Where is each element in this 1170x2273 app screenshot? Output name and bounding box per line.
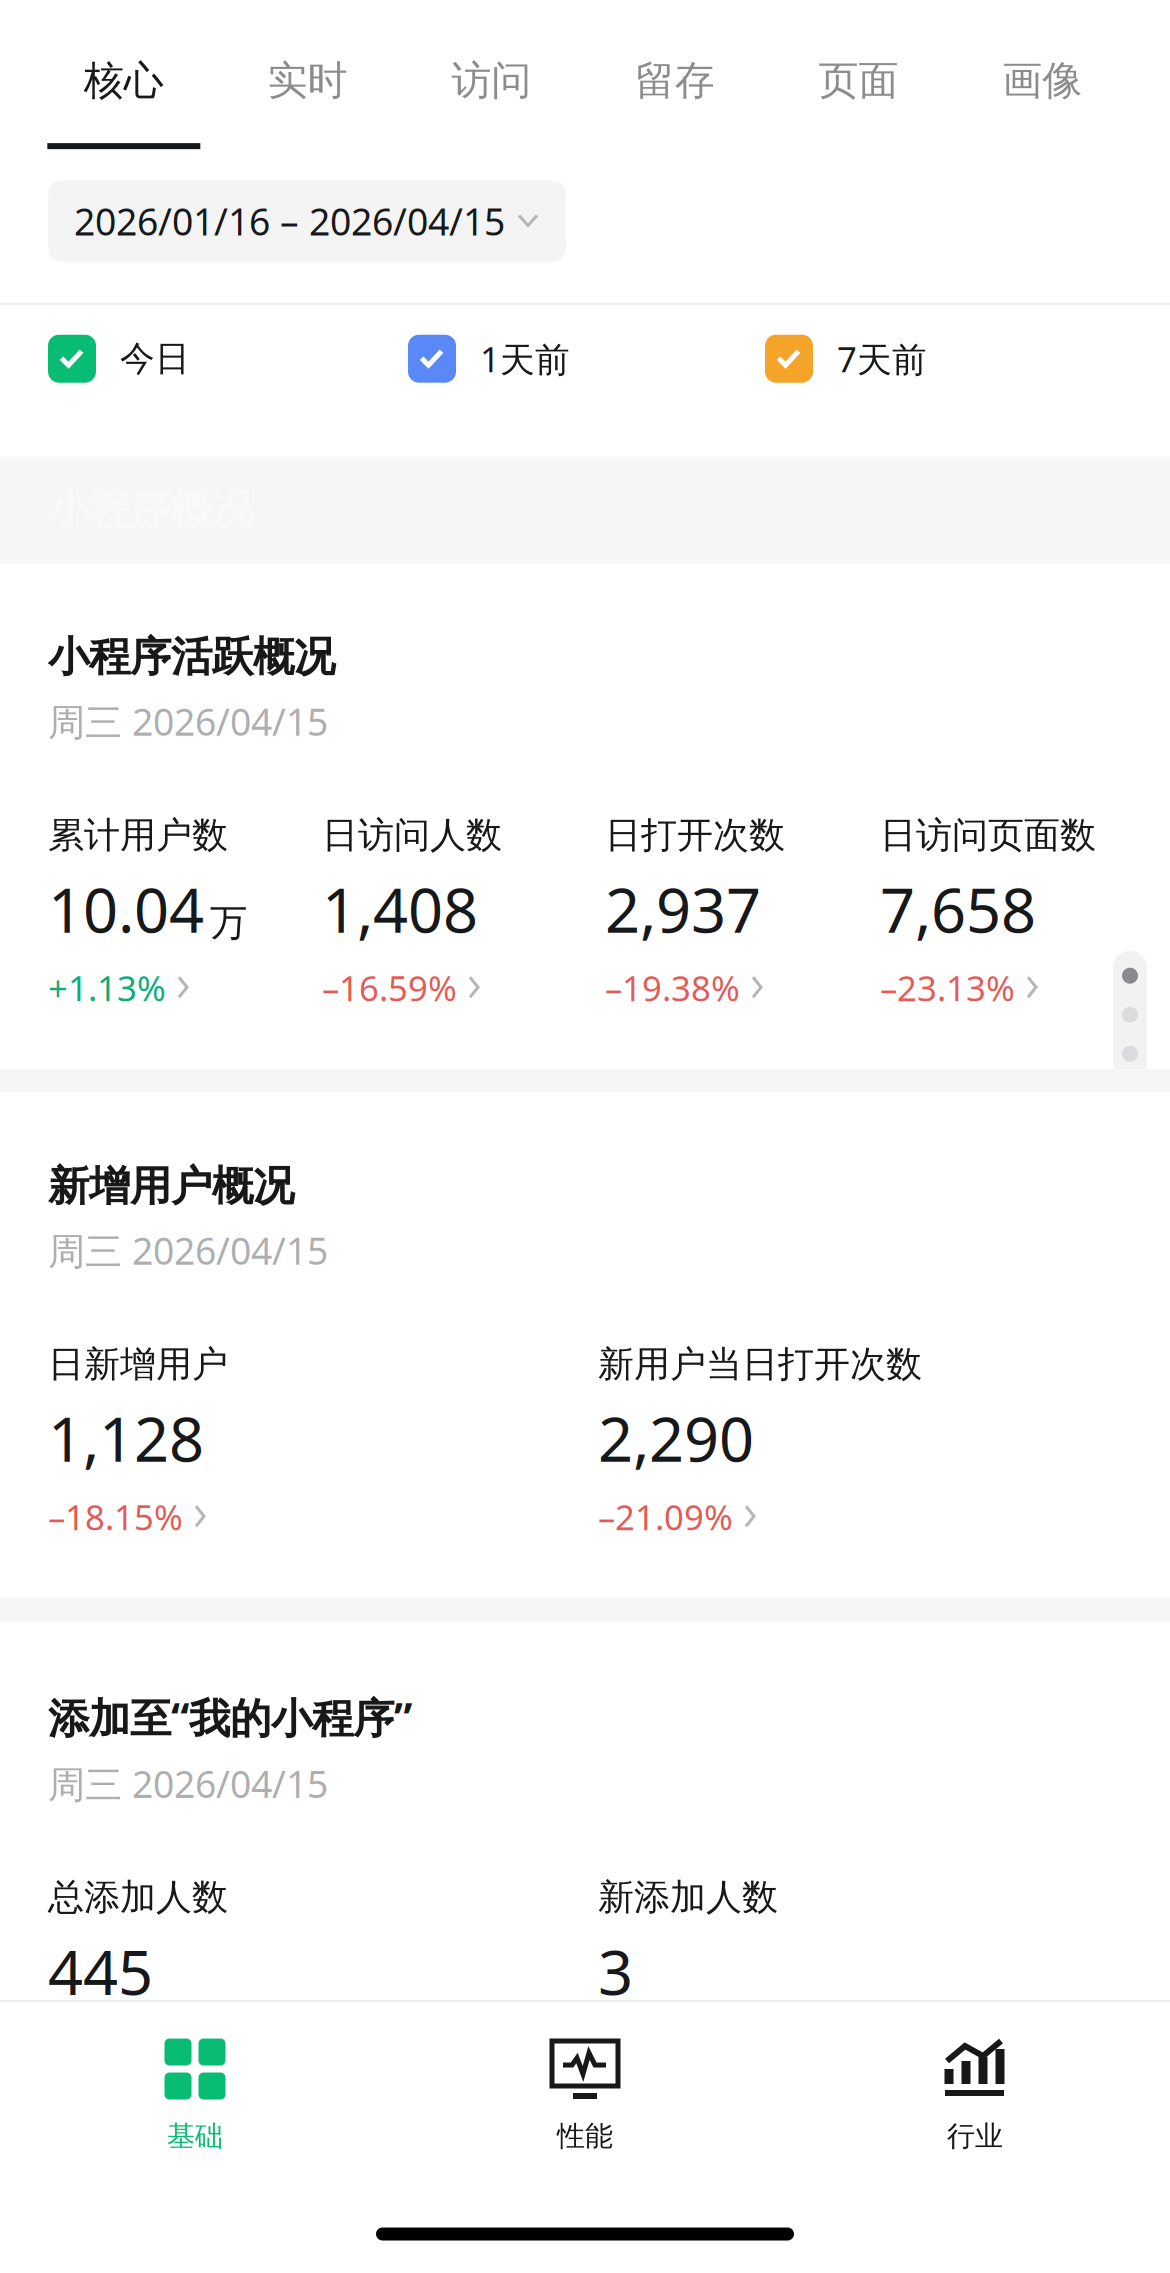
staticText: 新增用户概况 — [48, 1161, 294, 1212]
staticText: 7天前 — [837, 336, 927, 382]
staticText: 3 — [598, 1930, 633, 2012]
button[interactable]: 今日 — [48, 335, 408, 383]
button[interactable]: –18.15% — [48, 1494, 598, 1540]
staticText: 7,658 — [880, 868, 1036, 950]
staticText: 万 — [210, 900, 247, 946]
staticText: 页面 — [818, 56, 898, 105]
button[interactable]: +1.13% — [48, 965, 322, 1011]
button[interactable]: 访问 — [399, 56, 583, 149]
staticText: 今日 — [120, 337, 190, 380]
button[interactable]: –23.13% — [880, 965, 1140, 1011]
staticText: –19.38% — [605, 965, 740, 1011]
staticText: +1.13% — [48, 965, 166, 1011]
button[interactable]: 7天前 — [765, 335, 967, 383]
staticText: 日新增用户 — [48, 1342, 228, 1386]
staticText: 2026/01/16 – 2026/04/15 — [74, 196, 505, 246]
staticText: 日访问人数 — [322, 813, 502, 857]
staticText: 新用户当日打开次数 — [598, 1342, 922, 1386]
staticText: 周三 2026/04/15 — [48, 696, 328, 746]
staticText: 日访问页面数 — [880, 813, 1096, 857]
staticText: 基础 — [167, 2119, 223, 2153]
staticText: 小程序活跃概况 — [48, 632, 335, 682]
staticText: –18.15% — [48, 1494, 183, 1540]
button[interactable]: 实时 — [216, 56, 399, 149]
staticText: 留存 — [635, 56, 715, 105]
staticText: 添加至“我的小程序” — [48, 1690, 412, 1745]
staticText: 访问 — [451, 56, 531, 105]
staticText: 2,290 — [598, 1397, 754, 1479]
staticText: 1天前 — [480, 336, 570, 382]
button[interactable]: 核心 — [32, 56, 216, 149]
button[interactable]: 画像 — [950, 56, 1134, 149]
staticText: –23.13% — [880, 965, 1015, 1011]
staticText: 1,408 — [322, 868, 478, 950]
button[interactable]: 性能 — [390, 2038, 780, 2153]
staticText: 总添加人数 — [48, 1875, 228, 1919]
staticText: 新添加人数 — [598, 1875, 778, 1919]
staticText: 实时 — [267, 56, 347, 105]
staticText: 行业 — [947, 2119, 1003, 2153]
button[interactable]: 留存 — [583, 56, 767, 149]
staticText: 日打开次数 — [605, 813, 785, 857]
button[interactable]: 2026/01/16 – 2026/04/15 — [48, 180, 566, 262]
button[interactable]: 基础 — [0, 2038, 390, 2153]
staticText: 累计用户数 — [48, 813, 228, 857]
button[interactable]: –19.38% — [605, 965, 880, 1011]
button[interactable]: –21.09% — [598, 1494, 998, 1540]
staticText: 周三 2026/04/15 — [48, 1225, 328, 1275]
button[interactable]: 1天前 — [408, 335, 765, 383]
staticText: 445 — [48, 1930, 153, 2012]
button[interactable]: 页面 — [767, 56, 950, 149]
button[interactable]: 行业 — [780, 2038, 1170, 2153]
staticText: 10.04 — [48, 868, 204, 950]
button[interactable]: –16.59% — [322, 965, 605, 1011]
staticText: –21.09% — [598, 1494, 733, 1540]
staticText: 2,937 — [605, 868, 761, 950]
staticText: 1,128 — [48, 1397, 204, 1479]
staticText: 性能 — [557, 2119, 613, 2153]
staticText: –16.59% — [322, 965, 457, 1011]
staticText: 周三 2026/04/15 — [48, 1759, 328, 1808]
staticText: 核心 — [84, 56, 164, 105]
staticText: 画像 — [1002, 56, 1082, 105]
